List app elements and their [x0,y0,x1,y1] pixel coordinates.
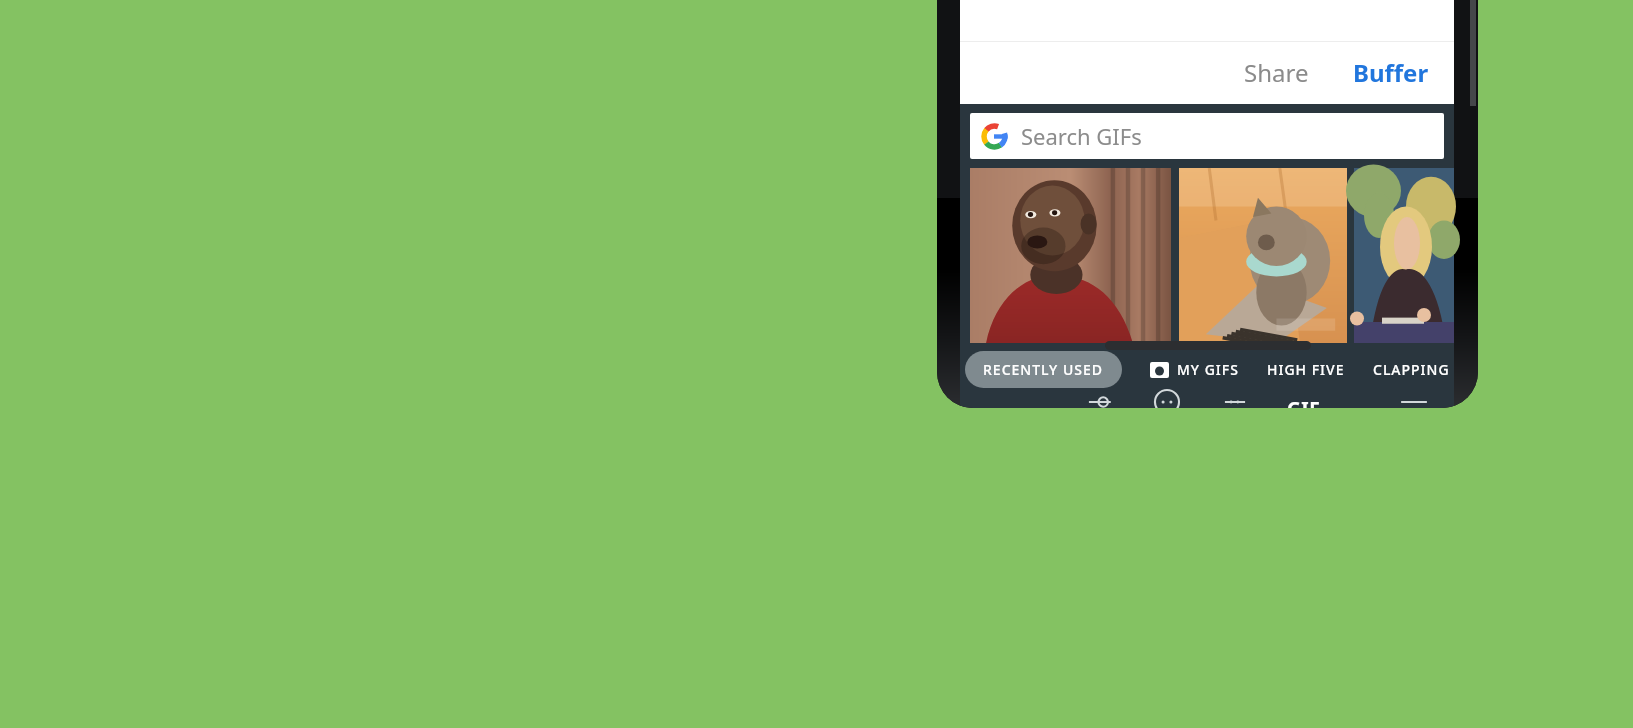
button[interactable]: HIGH FIVE [1263,351,1349,388]
button[interactable]: Buffer [1336,44,1446,101]
button[interactable]: Share [1227,44,1326,101]
button[interactable]: Backspace [1394,396,1434,408]
button[interactable] [1354,168,1454,343]
staticText: GIF [1287,396,1321,408]
button[interactable]: RECENTLY USED [965,351,1122,388]
button[interactable]: CLAPPING [1369,351,1454,388]
staticText: CLAPPING [1373,360,1450,379]
button[interactable]: MY GIFS [1146,351,1243,388]
button[interactable] [1179,168,1347,343]
button[interactable]: GIF [1279,396,1329,408]
staticText: Share [1244,56,1309,89]
button[interactable] [970,168,1171,343]
button[interactable]: Search GIFs [1079,396,1119,408]
button[interactable]: Stickers [1215,396,1255,408]
staticText: Buffer [1353,56,1429,89]
staticText: HIGH FIVE [1267,360,1345,379]
staticText: Search GIFs [1021,121,1142,151]
button[interactable]: Emoji [1147,396,1187,408]
button[interactable]: Search GIFs [970,113,1444,159]
staticText: MY GIFS [1177,360,1239,379]
staticText: RECENTLY USED [983,360,1104,379]
